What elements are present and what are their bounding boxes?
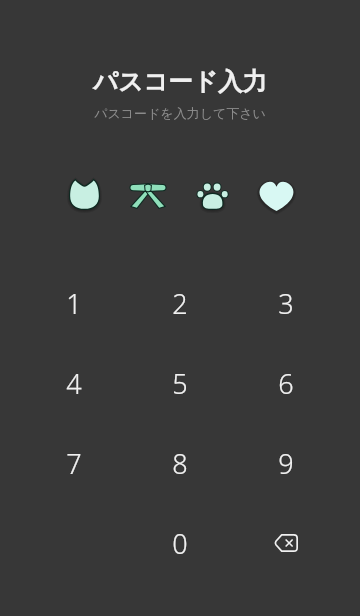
staticText: 9 <box>278 445 294 482</box>
staticText: 8 <box>172 445 188 482</box>
button[interactable]: 5 <box>127 343 233 423</box>
staticText: 1 <box>66 285 82 322</box>
staticText: 2 <box>172 285 188 322</box>
staticText: パスコードを入力して下さい <box>94 105 266 121</box>
button[interactable]: 2 <box>127 263 233 343</box>
button[interactable]: 4 <box>21 343 127 423</box>
staticText: パスコード入力 <box>93 66 267 97</box>
staticText: 0 <box>172 525 188 562</box>
button[interactable]: 8 <box>127 423 233 503</box>
staticText: 4 <box>66 365 82 402</box>
staticText: 5 <box>172 365 188 402</box>
button[interactable]: 9 <box>233 423 339 503</box>
button[interactable]: 3 <box>233 263 339 343</box>
button[interactable]: 1 <box>21 263 127 343</box>
button[interactable]: 7 <box>21 423 127 503</box>
button[interactable]: Backspace <box>233 503 339 583</box>
button[interactable]: 6 <box>233 343 339 423</box>
staticText: 6 <box>278 365 294 402</box>
staticText: 7 <box>66 445 82 482</box>
button[interactable]: 0 <box>127 503 233 583</box>
staticText: 3 <box>278 285 294 322</box>
